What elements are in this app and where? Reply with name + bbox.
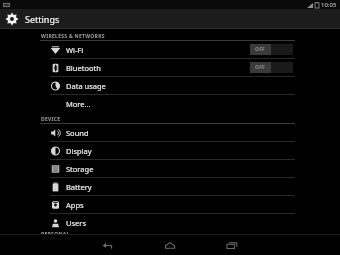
button[interactable]: Back (93, 235, 123, 255)
button[interactable]: Storage (40, 160, 295, 177)
button[interactable]: Display (40, 142, 295, 159)
button[interactable]: Users (40, 214, 295, 231)
staticText: Data usage (66, 81, 106, 91)
staticText: Settings (25, 13, 60, 25)
staticText: OFF (255, 64, 266, 71)
button[interactable]: Data usage (40, 77, 295, 94)
button[interactable]: Recent apps (217, 235, 247, 255)
staticText: Sound (66, 128, 89, 138)
button[interactable]: Apps (40, 196, 295, 213)
button[interactable]: Battery (40, 178, 295, 195)
button[interactable]: Sound (40, 124, 295, 141)
button[interactable]: More... (40, 95, 295, 112)
staticText: Battery (66, 182, 92, 192)
staticText: Storage (66, 164, 94, 174)
button[interactable]: Toggle (250, 44, 293, 55)
staticText: 10:05 (321, 1, 337, 9)
button[interactable]: Home (155, 235, 185, 255)
button[interactable]: Wi-Fi (40, 41, 295, 58)
staticText: Bluetooth (66, 63, 101, 73)
staticText: Users (66, 218, 86, 228)
button[interactable]: Toggle (250, 62, 293, 73)
staticText: Wi-Fi (66, 45, 84, 55)
staticText: OFF (255, 46, 266, 53)
staticText: Apps (66, 200, 84, 210)
button[interactable]: Settings (0, 9, 340, 28)
staticText: WIRELESS & NETWORKS (41, 33, 105, 40)
staticText: DEVICE (41, 116, 61, 123)
staticText: More... (66, 99, 91, 109)
button[interactable]: Bluetooth (40, 59, 295, 76)
staticText: PERSONAL (41, 231, 70, 234)
staticText: Display (66, 146, 92, 156)
